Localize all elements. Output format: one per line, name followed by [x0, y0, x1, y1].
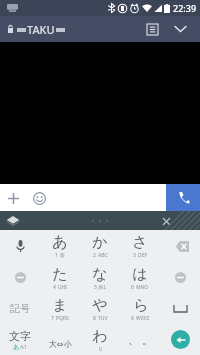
button[interactable]: Switch input mode	[0, 324, 40, 355]
staticText: 9	[131, 315, 134, 322]
staticText: MNO	[136, 284, 149, 291]
staticText: 4	[53, 284, 56, 291]
staticText: 6	[131, 284, 134, 291]
staticText: GHI	[58, 284, 68, 291]
staticText: PQRS	[56, 315, 69, 322]
button[interactable]: Backspace	[160, 230, 200, 262]
button[interactable]: Enter	[160, 324, 200, 355]
button[interactable]: ら	[120, 293, 160, 324]
button[interactable]: あ	[40, 230, 80, 262]
staticText: 。	[142, 333, 153, 347]
button[interactable]: か	[80, 230, 120, 262]
staticText: さ	[132, 233, 148, 252]
button[interactable]: わ	[80, 324, 120, 355]
staticText: 記号	[10, 302, 30, 315]
staticText: ま	[52, 296, 68, 315]
button[interactable]: Voice input	[0, 230, 40, 262]
button[interactable]: Punctuation	[120, 324, 160, 355]
button[interactable]: Symbols	[0, 293, 40, 324]
staticText: 8	[93, 315, 96, 322]
button[interactable]: Previous candidate	[0, 262, 40, 293]
staticText: な	[92, 265, 108, 284]
staticText: JKL	[99, 284, 107, 291]
staticText: 3	[133, 252, 136, 259]
button[interactable]: は	[120, 262, 160, 293]
staticText: 22:39	[173, 2, 197, 14]
staticText: TUV	[98, 315, 108, 322]
staticText: 2	[93, 252, 96, 259]
staticText: 、	[128, 333, 139, 347]
staticText: 文字	[9, 329, 31, 343]
staticText: @	[60, 252, 65, 259]
button[interactable]: や	[80, 293, 120, 324]
staticText: DEF	[138, 252, 148, 259]
button[interactable]: Participants list	[140, 17, 164, 41]
button[interactable]: た	[40, 262, 80, 293]
staticText: TAKU	[27, 22, 55, 37]
staticText: A1	[20, 343, 28, 351]
button[interactable]: Space	[160, 293, 200, 324]
staticText: ABC	[98, 252, 108, 259]
button[interactable]: ま	[40, 293, 80, 324]
button[interactable]: Emoji	[26, 185, 52, 211]
button[interactable]: Change case	[40, 324, 80, 355]
button[interactable]: さ	[120, 230, 160, 262]
button[interactable]: Close	[158, 213, 174, 229]
staticText: た	[52, 265, 68, 284]
staticText: あ	[52, 233, 68, 252]
staticText: は	[132, 265, 148, 284]
staticText: 7	[51, 315, 54, 322]
button[interactable]: Call	[166, 184, 200, 211]
staticText: わ	[92, 327, 108, 346]
staticText: 大⇔小	[49, 339, 72, 349]
staticText: あ	[13, 343, 20, 351]
staticText: 1	[55, 252, 58, 259]
staticText: 5	[94, 284, 97, 291]
staticText: か	[92, 233, 108, 252]
staticText: ら	[133, 296, 149, 315]
staticText: WXYZ	[136, 315, 150, 322]
staticText: や	[92, 296, 108, 315]
button[interactable]: Attach	[0, 185, 26, 211]
button[interactable]: Collapse	[168, 17, 192, 41]
button[interactable]: な	[80, 262, 120, 293]
button[interactable]: Previous candidate	[160, 262, 200, 293]
staticText: 0	[99, 346, 102, 353]
